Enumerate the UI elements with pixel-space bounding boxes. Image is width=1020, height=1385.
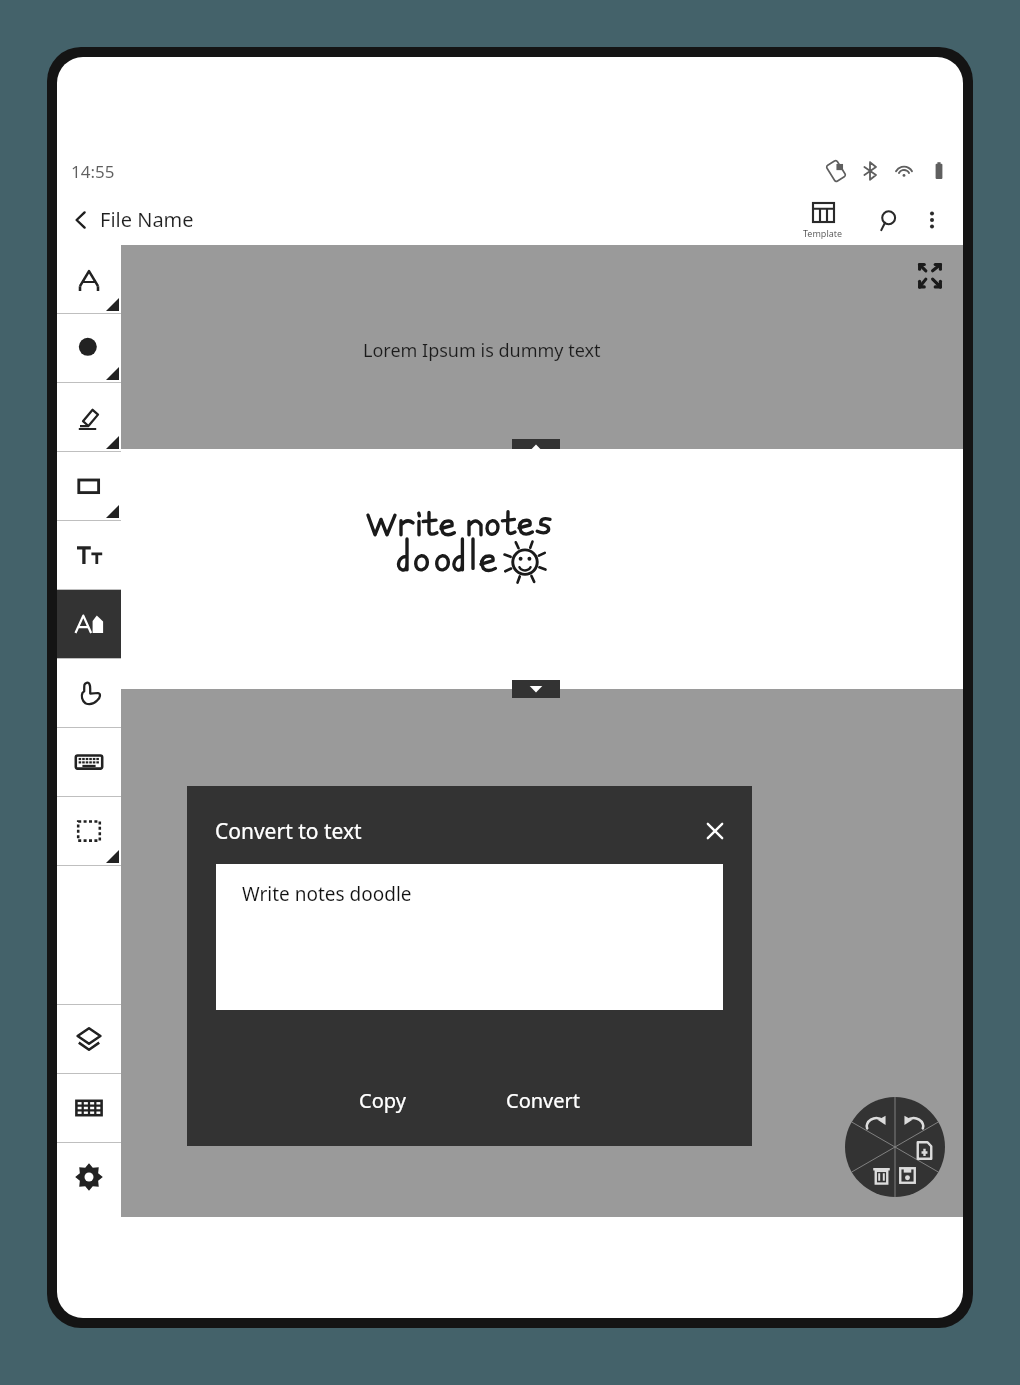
button[interactable]: Select — [57, 797, 121, 865]
button[interactable]: Undo — [845, 1097, 895, 1147]
button[interactable]: Convert — [486, 1079, 601, 1122]
button[interactable]: Search — [871, 201, 909, 239]
staticText: Template — [803, 227, 843, 239]
button[interactable]: Delete — [845, 1147, 895, 1197]
button[interactable]: Pan — [57, 659, 121, 727]
staticText: Lorem Ipsum is dummy text — [363, 338, 601, 363]
staticText: Convert — [506, 1087, 581, 1114]
button[interactable]: Grid — [57, 1074, 121, 1142]
button[interactable]: Text size — [57, 521, 121, 589]
button[interactable]: Expand — [917, 263, 943, 289]
staticText: Write notes doodle — [242, 881, 412, 907]
button[interactable]: Pen — [57, 245, 121, 313]
button[interactable]: File Name — [57, 200, 208, 239]
button[interactable]: Brush — [57, 314, 121, 382]
staticText: Copy — [359, 1087, 406, 1114]
button[interactable]: Keyboard — [57, 728, 121, 796]
button[interactable]: Collapse up — [512, 439, 560, 457]
button[interactable]: Settings — [57, 1143, 121, 1211]
button[interactable]: Close — [700, 816, 730, 846]
button[interactable]: Highlighter — [57, 383, 121, 451]
staticText: File Name — [100, 206, 194, 233]
button[interactable]: Template — [797, 200, 849, 239]
button[interactable]: More options — [915, 203, 949, 237]
button[interactable]: Convert to text — [57, 590, 121, 658]
button[interactable]: Save — [895, 1147, 945, 1197]
staticText: Convert to text — [215, 817, 700, 846]
button[interactable]: Shape — [57, 452, 121, 520]
button[interactable]: Redo — [895, 1097, 945, 1147]
button[interactable]: Layers — [57, 1005, 121, 1073]
staticText: 14:55 — [71, 160, 115, 183]
button[interactable]: Collapse down — [512, 680, 560, 698]
button[interactable]: Copy — [339, 1079, 426, 1122]
